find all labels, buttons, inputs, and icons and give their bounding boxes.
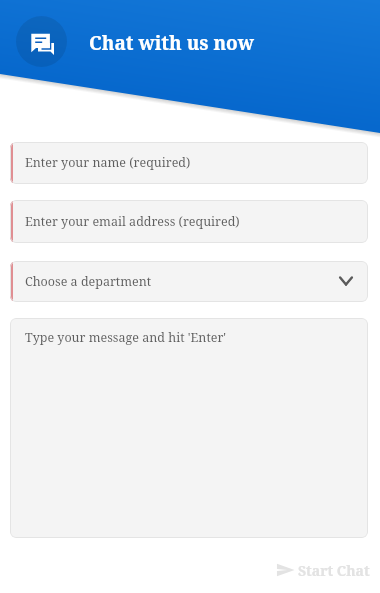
button[interactable]: Choose a department bbox=[10, 261, 368, 302]
button[interactable]: Type your message and hit 'Enter' bbox=[10, 318, 368, 538]
button[interactable]: Enter your name (required) bbox=[10, 142, 368, 184]
staticText: Chat with us now bbox=[89, 30, 255, 56]
staticText: Enter your email address (required) bbox=[25, 213, 240, 230]
button[interactable]: Enter your email address (required) bbox=[10, 200, 368, 243]
staticText: Choose a department bbox=[25, 273, 152, 290]
button[interactable]: Chat bbox=[16, 16, 67, 67]
staticText: Start Chat bbox=[298, 561, 370, 580]
staticText: Type your message and hit 'Enter' bbox=[25, 329, 227, 346]
staticText: Enter your name (required) bbox=[25, 154, 191, 171]
other: Expand department list bbox=[339, 276, 353, 286]
button[interactable]: Start Chat bbox=[266, 552, 372, 584]
